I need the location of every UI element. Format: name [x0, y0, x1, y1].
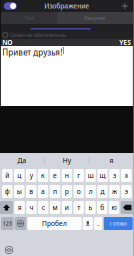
button[interactable]: . — [94, 217, 102, 230]
button[interactable]: я — [14, 201, 25, 214]
button[interactable]: Delete — [121, 201, 134, 214]
button[interactable]: 123 — [1, 217, 14, 230]
staticText: Ну — [63, 156, 71, 165]
staticText: ж — [112, 187, 117, 196]
button[interactable]: Shift — [0, 201, 13, 214]
button[interactable]: я — [89, 153, 134, 168]
staticText: п — [53, 187, 57, 196]
button[interactable]: з — [109, 169, 120, 182]
staticText: я — [110, 156, 114, 165]
button[interactable]: ж — [109, 185, 120, 198]
staticText: ь — [88, 203, 92, 212]
staticText: р — [65, 187, 69, 196]
staticText: д — [100, 187, 104, 196]
staticText: н — [65, 171, 69, 180]
button[interactable]: ь — [85, 201, 96, 214]
button[interactable]: щ — [97, 169, 108, 182]
staticText: Рисунок — [84, 14, 105, 22]
staticText: я — [18, 203, 22, 212]
staticText: б — [100, 203, 104, 212]
button[interactable]: Ну — [45, 153, 89, 168]
button[interactable]: м — [50, 201, 60, 214]
button[interactable]: Рисунок — [57, 12, 133, 24]
staticText: й — [5, 171, 9, 180]
button[interactable]: д — [97, 185, 108, 198]
staticText: 123 — [3, 220, 12, 227]
button[interactable]: б — [97, 201, 107, 214]
staticText: е — [53, 171, 57, 180]
button[interactable]: Пробел — [27, 217, 82, 230]
button[interactable]: х — [121, 169, 132, 182]
staticText: м — [53, 203, 58, 212]
staticText: ч — [29, 203, 33, 212]
button[interactable]: ц — [14, 169, 24, 182]
button[interactable]: в — [26, 185, 36, 198]
button[interactable]: п — [50, 185, 60, 198]
button[interactable]: н — [62, 169, 72, 182]
staticText: Да — [18, 156, 27, 165]
button[interactable]: э — [121, 185, 132, 198]
staticText: с — [42, 203, 45, 212]
button[interactable]: Dictate — [83, 217, 93, 230]
button[interactable]: ю — [109, 201, 119, 214]
staticText: Слова не обязательны — [10, 31, 66, 39]
button[interactable]: ы — [14, 185, 24, 198]
staticText: т — [77, 203, 80, 212]
staticText: и — [65, 203, 69, 212]
button[interactable]: с — [38, 201, 48, 214]
button[interactable]: а — [38, 185, 48, 198]
button[interactable]: Next keyboard — [15, 217, 26, 230]
button[interactable]: л — [85, 185, 96, 198]
staticText: л — [89, 187, 93, 196]
button[interactable]: YES — [119, 39, 133, 46]
button[interactable]: ч — [26, 201, 37, 214]
staticText: Изображение — [44, 2, 89, 10]
staticText: х — [125, 171, 128, 180]
button[interactable]: Switch keyboard — [0, 244, 18, 256]
staticText: ц — [17, 171, 21, 180]
staticText: ы — [17, 187, 22, 196]
staticText: ю — [111, 203, 116, 212]
staticText: з — [113, 171, 116, 180]
staticText: ш — [88, 171, 94, 180]
staticText: . — [97, 219, 99, 228]
staticText: в — [29, 187, 33, 196]
staticText: о — [77, 187, 81, 196]
staticText: г — [77, 171, 80, 180]
button[interactable]: Да — [0, 153, 44, 168]
button[interactable]: ш — [85, 169, 96, 182]
button[interactable]: ф — [2, 185, 12, 198]
staticText: к — [41, 171, 45, 180]
staticText: YES — [119, 38, 131, 47]
button[interactable]: е — [50, 169, 60, 182]
staticText: Чат — [24, 14, 33, 22]
button[interactable]: Add — [117, 0, 133, 12]
staticText: Пробел — [42, 219, 67, 228]
staticText: Готово — [110, 220, 127, 227]
staticText: щ — [99, 171, 105, 180]
button[interactable]: NO — [1, 39, 12, 46]
button[interactable]: р — [62, 185, 72, 198]
staticText: а — [41, 187, 45, 196]
staticText: э — [125, 187, 128, 196]
button[interactable]: Готово — [104, 217, 133, 230]
button[interactable]: и — [62, 201, 72, 214]
staticText: у — [30, 171, 33, 180]
button[interactable]: й — [2, 169, 12, 182]
button[interactable]: т — [73, 201, 84, 214]
staticText: ф — [5, 187, 10, 196]
staticText: Привет друзья! — [2, 47, 62, 58]
button[interactable]: у — [26, 169, 36, 182]
button[interactable]: г — [73, 169, 84, 182]
button[interactable]: Toggle — [1, 0, 23, 12]
button[interactable]: к — [38, 169, 48, 182]
button[interactable]: о — [73, 185, 84, 198]
staticText: NO — [2, 38, 12, 47]
